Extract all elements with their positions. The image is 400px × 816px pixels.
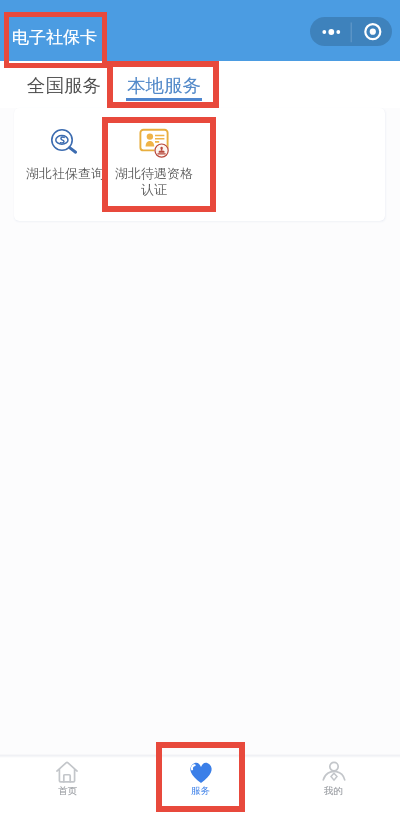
staticText: 电子社保卡 [12,27,97,48]
staticText: 我的 [324,785,343,797]
button[interactable]: 本地服务 [114,61,214,108]
staticText: 首页 [58,785,77,797]
button[interactable]: 全国服务 [14,61,114,108]
staticText: 湖北待遇资格 [115,165,193,181]
button[interactable]: 我的 [267,758,400,816]
staticText: 认证 [141,181,167,197]
staticText: 本地服务 [127,74,201,97]
staticText: 全国服务 [27,74,101,97]
button[interactable]: 首页 [0,758,134,816]
staticText: 服务 [191,785,210,797]
staticText: 湖北社保查询 [26,165,104,181]
button[interactable]: 湖北社保查询 [20,108,109,221]
button[interactable]: 湖北待遇资格 [109,108,199,221]
button[interactable]: 小程序菜单和关闭 [310,17,392,46]
button[interactable]: 服务 [134,758,267,816]
